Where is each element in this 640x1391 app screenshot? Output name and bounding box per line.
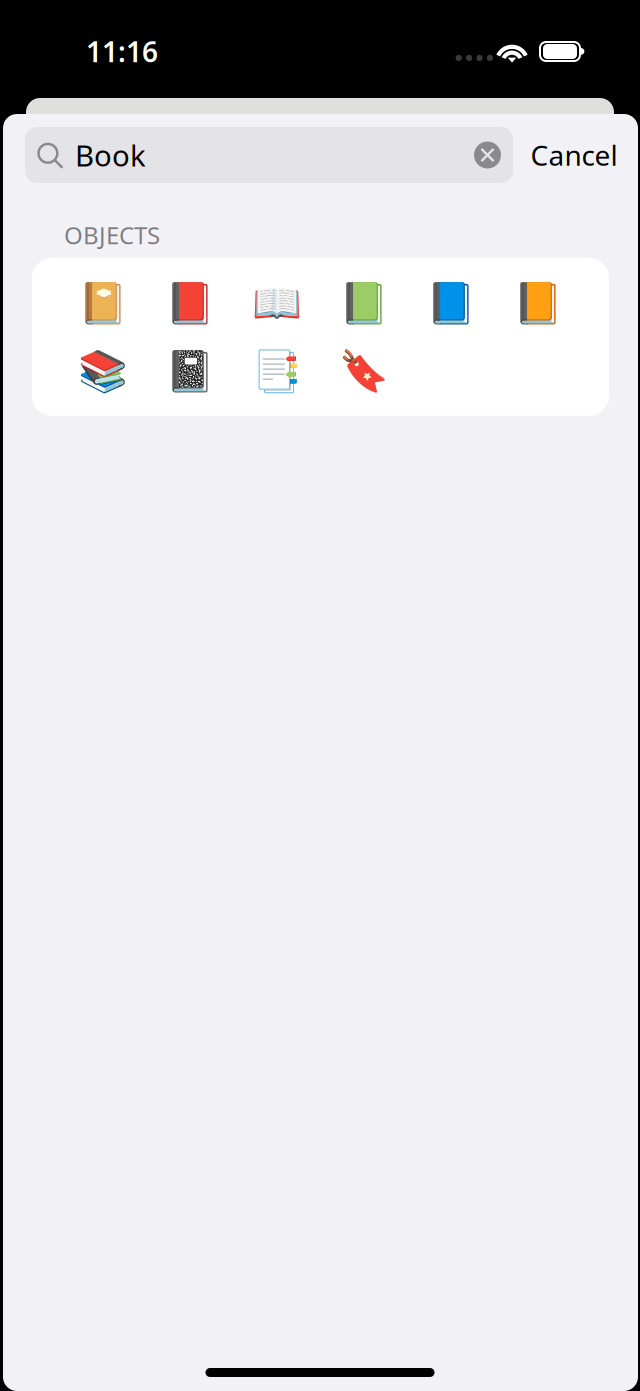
button[interactable]: bookmark (320, 337, 407, 405)
button[interactable]: orange book (494, 269, 581, 337)
staticText: Book (75, 135, 146, 174)
button[interactable]: notebook (146, 337, 233, 405)
staticText: 📕 (165, 279, 215, 326)
button[interactable]: bookmark tabs (233, 337, 320, 405)
button[interactable]: open book (233, 269, 320, 337)
button[interactable]: Book (25, 127, 513, 183)
staticText: 📓 (165, 347, 215, 394)
button[interactable]: books (59, 337, 146, 405)
button[interactable]: notebook with decorative cover (59, 269, 146, 337)
staticText: 📖 (252, 279, 302, 326)
staticText: 📚 (78, 347, 128, 394)
staticText: 📗 (339, 279, 389, 326)
button[interactable]: blue book (407, 269, 494, 337)
staticText: OBJECTS (64, 219, 160, 251)
staticText: 📙 (513, 279, 563, 326)
button[interactable]: Cancel (513, 127, 625, 183)
staticText: 📘 (426, 279, 476, 326)
staticText: 📔 (78, 279, 128, 326)
staticText: 🔖 (339, 347, 389, 394)
staticText: Cancel (530, 136, 617, 174)
staticText: 📑 (252, 347, 302, 394)
staticText: 11:16 (86, 33, 158, 70)
button[interactable]: closed book (146, 269, 233, 337)
button[interactable]: green book (320, 269, 407, 337)
